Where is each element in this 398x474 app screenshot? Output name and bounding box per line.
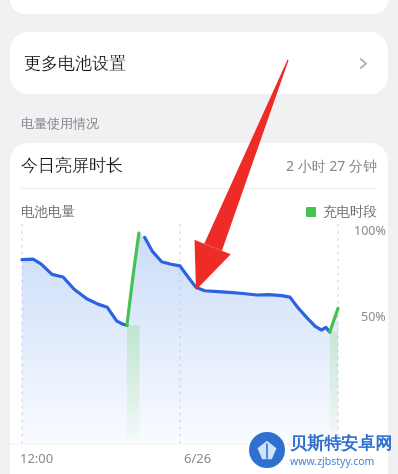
staticText: 电量使用情况: [21, 115, 99, 131]
staticText: www.zjbstyy.com: [290, 454, 375, 468]
button[interactable]: 更多电池设置: [10, 32, 388, 94]
other: 打开更多电池设置: [355, 55, 372, 72]
staticText: 50%: [361, 308, 386, 325]
staticText: 100%: [354, 222, 386, 239]
staticText: 2 小时 27 分钟: [286, 156, 377, 175]
staticText: 今日亮屏时长: [21, 155, 123, 176]
staticText: 6/26: [184, 449, 212, 467]
staticText: 贝斯特安卓网: [290, 433, 392, 454]
staticText: 更多电池设置: [24, 53, 126, 74]
staticText: 电池电量: [21, 203, 75, 220]
staticText: 充电时段: [323, 203, 377, 220]
staticText: 12:00: [20, 449, 54, 467]
button[interactable]: 今日亮屏时长: [10, 143, 388, 188]
